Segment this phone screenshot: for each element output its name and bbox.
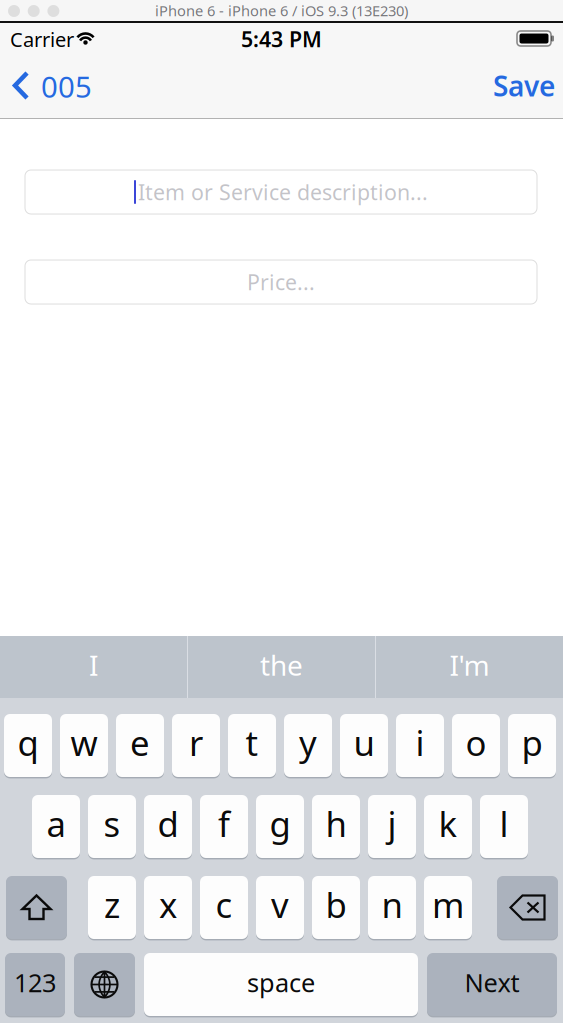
button[interactable]: i xyxy=(0,0,563,1023)
staticText: j xyxy=(387,800,396,846)
button[interactable]: t xyxy=(0,0,563,1023)
staticText: Price... xyxy=(247,268,315,296)
button[interactable]: f xyxy=(0,0,563,1023)
staticText: Save xyxy=(493,67,555,104)
staticText: n xyxy=(381,881,402,927)
button[interactable]: x xyxy=(0,0,563,1023)
staticText: Carrier xyxy=(10,26,74,53)
button[interactable]: y xyxy=(0,0,563,1023)
button[interactable]: Shift xyxy=(0,0,563,1023)
button[interactable]: z xyxy=(0,0,563,1023)
staticText: d xyxy=(157,800,178,846)
staticText: m xyxy=(432,881,464,927)
staticText: t xyxy=(245,719,258,765)
staticText: q xyxy=(17,719,38,765)
button[interactable]: 123 xyxy=(0,0,563,1023)
button[interactable]: Item or Service description... xyxy=(0,0,563,1023)
staticText: r xyxy=(189,719,203,765)
button[interactable]: m xyxy=(0,0,563,1023)
staticText: h xyxy=(325,800,346,846)
staticText: k xyxy=(438,800,457,846)
staticText: Next xyxy=(464,966,519,999)
staticText: 005 xyxy=(41,67,92,106)
staticText: 5:43 PM xyxy=(241,25,322,53)
button[interactable]: space xyxy=(0,0,563,1023)
button[interactable]: b xyxy=(0,0,563,1023)
staticText: w xyxy=(70,719,97,765)
button[interactable]: 005 xyxy=(0,0,563,1023)
staticText: Item or Service description... xyxy=(138,178,428,206)
button[interactable]: d xyxy=(0,0,563,1023)
button[interactable]: q xyxy=(0,0,563,1023)
button[interactable]: w xyxy=(0,0,563,1023)
staticText: I xyxy=(89,646,98,684)
button[interactable]: n xyxy=(0,0,563,1023)
staticText: g xyxy=(269,800,290,846)
button[interactable]: k xyxy=(0,0,563,1023)
button[interactable]: l xyxy=(0,0,563,1023)
button[interactable]: s xyxy=(0,0,563,1023)
staticText: x xyxy=(159,881,177,927)
button[interactable]: p xyxy=(0,0,563,1023)
staticText: a xyxy=(46,800,65,846)
staticText: o xyxy=(465,719,486,765)
staticText: f xyxy=(218,800,230,846)
staticText: p xyxy=(521,719,542,765)
button[interactable]: e xyxy=(0,0,563,1023)
staticText: b xyxy=(325,881,346,927)
staticText: u xyxy=(353,719,374,765)
button[interactable]: the xyxy=(188,636,375,698)
button[interactable]: Save xyxy=(0,0,563,1023)
staticText: y xyxy=(299,719,317,765)
staticText: l xyxy=(499,800,508,846)
staticText: c xyxy=(215,881,232,927)
staticText: iPhone 6 - iPhone 6 / iOS 9.3 (13E230) xyxy=(155,1,408,20)
staticText: i xyxy=(415,719,424,765)
button[interactable]: j xyxy=(0,0,563,1023)
button[interactable]: Next xyxy=(0,0,563,1023)
button[interactable]: Next keyboard xyxy=(0,0,563,1023)
staticText: I'm xyxy=(449,646,489,684)
button[interactable]: v xyxy=(0,0,563,1023)
staticText: e xyxy=(130,719,150,765)
button[interactable]: u xyxy=(0,0,563,1023)
button[interactable]: o xyxy=(0,0,563,1023)
button[interactable]: I xyxy=(0,636,187,698)
button[interactable]: r xyxy=(0,0,563,1023)
staticText: s xyxy=(103,800,120,846)
button[interactable]: a xyxy=(0,0,563,1023)
button[interactable]: h xyxy=(0,0,563,1023)
button[interactable]: c xyxy=(0,0,563,1023)
staticText: v xyxy=(271,881,289,927)
staticText: z xyxy=(104,881,120,927)
button[interactable]: I'm xyxy=(376,636,563,698)
button[interactable]: Price... xyxy=(0,0,563,1023)
staticText: the xyxy=(260,646,303,684)
button[interactable]: g xyxy=(0,0,563,1023)
staticText: 123 xyxy=(14,966,56,999)
button[interactable]: Delete xyxy=(0,0,563,1023)
staticText: space xyxy=(247,966,315,999)
